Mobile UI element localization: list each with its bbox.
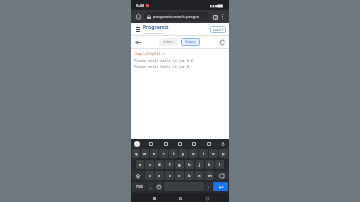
staticText: s [149, 162, 151, 167]
button[interactable]: j [195, 160, 204, 169]
staticText: , [150, 184, 152, 189]
staticText: l [219, 162, 221, 167]
button[interactable]: l [215, 160, 224, 169]
button[interactable]: x [155, 171, 164, 180]
button[interactable]: Home [134, 12, 143, 21]
button[interactable]: GIF [177, 141, 183, 147]
button[interactable]: p [219, 149, 228, 158]
button[interactable]: n [195, 171, 204, 180]
button[interactable]: , [147, 182, 154, 191]
button[interactable]: Menu [134, 26, 141, 33]
staticText: Output [185, 40, 196, 44]
staticText: /tmp/yO1tpO4l.o [134, 51, 165, 56]
staticText: Online Compiler [143, 31, 163, 34]
button[interactable]: Output [181, 38, 200, 46]
staticText: y [182, 151, 185, 156]
staticText: Please enter balls in jar A:8 [134, 58, 193, 63]
staticText: p [222, 151, 225, 156]
staticText: r [163, 151, 165, 156]
button[interactable]: t [169, 149, 178, 158]
staticText: b [188, 173, 191, 178]
staticText: m [208, 173, 212, 178]
button[interactable]: k [205, 160, 214, 169]
staticText: n [198, 173, 201, 178]
button[interactable]: i [199, 149, 208, 158]
button[interactable]: Voice input [220, 141, 226, 147]
button[interactable]: z [145, 171, 154, 180]
button[interactable]: Emoji [155, 182, 163, 191]
staticText: w [143, 151, 147, 156]
button[interactable]: r [159, 149, 168, 158]
button[interactable]: w [141, 149, 149, 158]
button[interactable]: Clipboard [191, 141, 197, 147]
staticText: e [153, 151, 156, 156]
staticText: index.c [163, 40, 174, 44]
button[interactable]: Home [176, 194, 184, 202]
staticText: Please enter balls in jar B: [134, 64, 191, 69]
button[interactable]: o [209, 149, 218, 158]
staticText: q [135, 151, 138, 156]
staticText: k [208, 162, 211, 167]
staticText: h [188, 162, 191, 167]
staticText: d [158, 162, 161, 167]
staticText: v [178, 173, 181, 178]
staticText: programiz.com/c-progra [153, 14, 199, 19]
button[interactable]: d [155, 160, 164, 169]
button[interactable]: e [150, 149, 158, 158]
staticText: o [212, 151, 215, 156]
button[interactable]: Themes [148, 141, 154, 147]
staticText: g [178, 162, 181, 167]
staticText: a [139, 162, 142, 167]
button[interactable]: s [145, 160, 154, 169]
button[interactable]: Stickers [163, 141, 169, 147]
staticText: u [192, 151, 195, 156]
button[interactable]: q [132, 149, 140, 158]
staticText: z [149, 173, 151, 178]
button[interactable]: Learn C [210, 26, 226, 33]
button[interactable]: More options [219, 13, 226, 20]
button[interactable]: u [189, 149, 198, 158]
button[interactable]: m [205, 171, 214, 180]
button[interactable]: c [165, 171, 174, 180]
button[interactable]: ?123 [132, 182, 146, 191]
button[interactable]: Recents [150, 194, 158, 202]
staticText: t [173, 151, 175, 156]
staticText: Learn C [213, 28, 224, 32]
staticText: x [158, 173, 161, 178]
button[interactable]: Settings [206, 141, 212, 147]
button[interactable]: h [185, 160, 194, 169]
button[interactable]: v [175, 171, 184, 180]
button[interactable]: a [136, 160, 144, 169]
button[interactable]: Tabs [211, 13, 219, 21]
button[interactable]: Backspace [215, 171, 228, 180]
button[interactable]: programiz.com/c-progra [144, 12, 210, 21]
staticText: c [169, 173, 171, 178]
staticText: ?123 [136, 185, 143, 189]
staticText: j [199, 162, 201, 167]
button[interactable]: Back [134, 38, 142, 46]
staticText: . [208, 184, 210, 189]
button[interactable]: Back [203, 194, 211, 202]
button[interactable]: f [165, 160, 174, 169]
button[interactable]: y [179, 149, 188, 158]
button[interactable]: Shift [132, 171, 144, 180]
staticText: 2 [215, 16, 217, 20]
staticText: i [203, 151, 205, 156]
button[interactable]: g [175, 160, 184, 169]
button[interactable]: Refresh [218, 38, 226, 46]
button[interactable]: b [185, 171, 194, 180]
button[interactable]: index.c [159, 38, 178, 46]
staticText: Programiz [143, 24, 169, 31]
staticText: 5:44 [136, 3, 144, 8]
staticText: f [169, 162, 171, 167]
button[interactable]: Enter [213, 182, 228, 191]
button[interactable]: . [205, 182, 212, 191]
button[interactable]: Google [134, 141, 140, 147]
